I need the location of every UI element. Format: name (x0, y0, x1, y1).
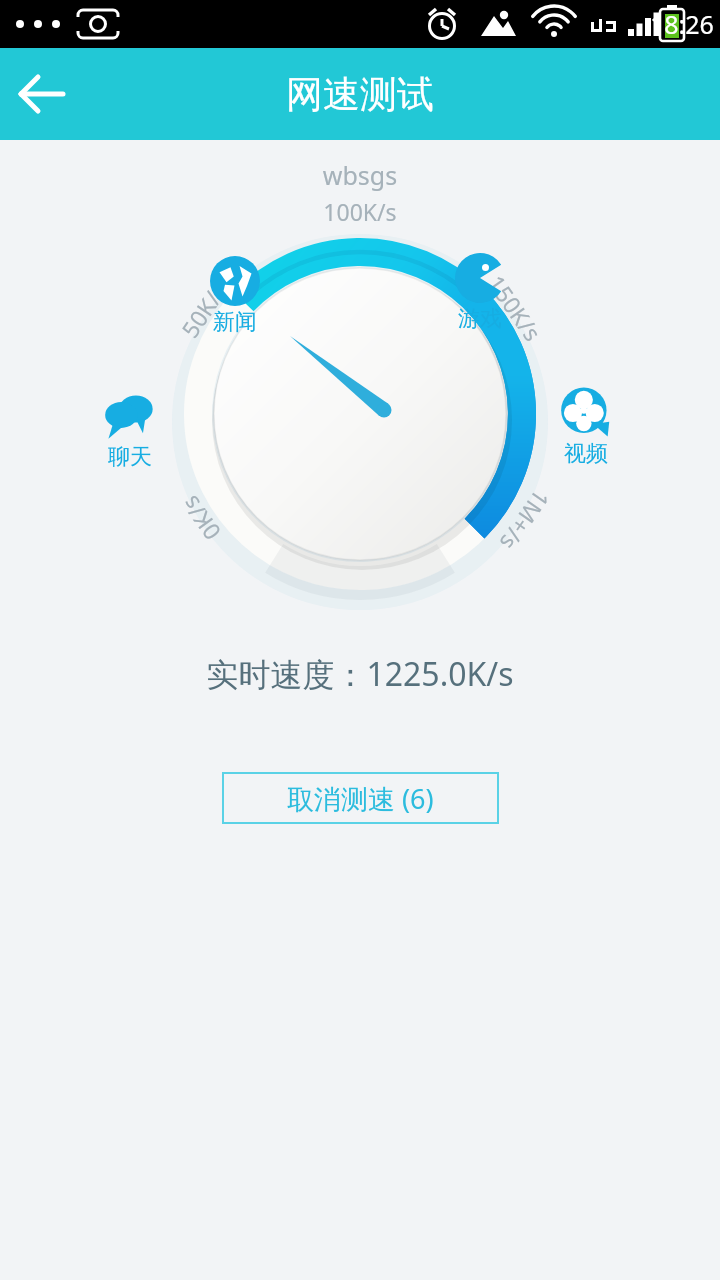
button[interactable]: 聊天 (85, 389, 175, 471)
staticText: 视频 (564, 440, 608, 468)
button[interactable]: Back (0, 49, 90, 139)
staticText: 新闻 (213, 308, 257, 336)
staticText: 聊天 (108, 443, 152, 471)
button[interactable]: 视频 (541, 386, 631, 468)
staticText: wbsgs (0, 158, 720, 192)
staticText: 18:26 (650, 7, 714, 41)
staticText: 50K/s (174, 275, 233, 343)
staticText: 100K/s (323, 196, 397, 227)
staticText: 取消测速 (6) (287, 780, 434, 817)
staticText: 0K/s (174, 490, 227, 547)
button[interactable]: 游戏 (435, 251, 525, 333)
button[interactable]: 新闻 (190, 254, 280, 336)
staticText: 150K/s (481, 268, 549, 347)
staticText: 游戏 (458, 305, 502, 333)
staticText: 实时速度：1225.0K/s (0, 652, 720, 696)
staticText: 网速测试 (286, 71, 434, 118)
staticText: 1M+/s (494, 484, 557, 557)
button[interactable]: 取消测速 (6) (222, 772, 499, 824)
